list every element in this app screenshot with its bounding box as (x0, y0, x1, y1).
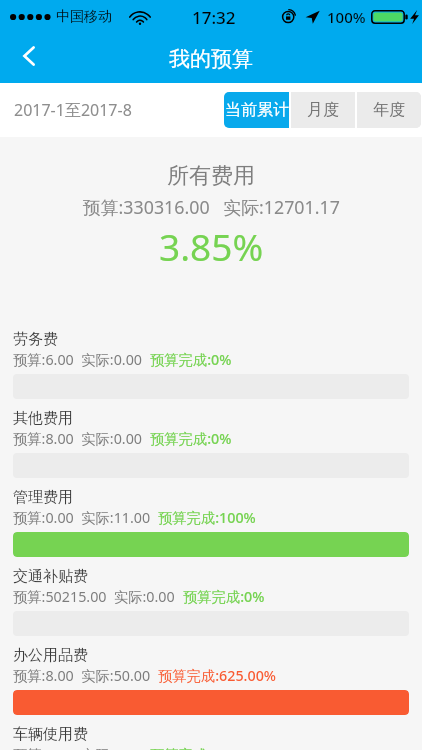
staticText: 预算完成:0% (150, 429, 232, 449)
staticText: 当前累计 (225, 100, 289, 120)
staticText: 2017-1至2017-8 (14, 99, 132, 121)
button[interactable]: Back (6, 34, 52, 83)
staticText: 预算完成:0% (150, 745, 232, 750)
button[interactable]: 其他费用 (0, 404, 422, 483)
staticText: 3.85% (159, 221, 264, 271)
button[interactable]: 劳务费 (0, 325, 422, 404)
staticText: 劳务费 (13, 330, 58, 349)
staticText: 预算:0.00 实际:11.00 (13, 508, 158, 528)
staticText: 预算:6.00 实际:0.00 (13, 350, 150, 370)
staticText: 100% (327, 7, 366, 27)
button[interactable]: 交通补贴费 (0, 562, 422, 641)
staticText: 预算:8.00 实际:50.00 (13, 666, 158, 686)
button[interactable]: 管理费用 (0, 483, 422, 562)
staticText: 17:32 (192, 6, 236, 29)
staticText: 所有费用 (167, 162, 255, 190)
button[interactable]: 办公用品费 (0, 641, 422, 720)
button[interactable]: 当前累计 (224, 92, 289, 128)
staticText: 我的预算 (169, 46, 253, 72)
staticText: 车辆使用费 (13, 725, 88, 744)
staticText: 预算:330316.00 实际:12701.17 (83, 195, 340, 219)
staticText: 预算:0.00 实际:0.00 (13, 745, 150, 750)
staticText: 其他费用 (13, 409, 73, 428)
staticText: 办公用品费 (13, 646, 88, 665)
staticText: 中国移动 (56, 8, 112, 26)
staticText: 预算完成:100% (158, 508, 256, 528)
staticText: 预算:8.00 实际:0.00 (13, 429, 150, 449)
staticText: 预算完成:0% (150, 350, 232, 370)
button[interactable]: 年度 (357, 92, 421, 128)
staticText: 预算:50215.00 实际:0.00 (13, 587, 183, 607)
staticText: 月度 (307, 100, 339, 120)
staticText: 年度 (373, 100, 405, 120)
staticText: 管理费用 (13, 488, 73, 507)
staticText: 交通补贴费 (13, 567, 88, 586)
button[interactable]: 车辆使用费 (0, 720, 422, 750)
button[interactable]: 月度 (291, 92, 355, 128)
staticText: 预算完成:0% (183, 587, 265, 607)
staticText: 预算完成:625.00% (158, 666, 277, 686)
